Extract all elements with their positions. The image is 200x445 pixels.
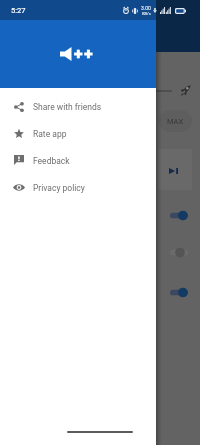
button[interactable]: Privacy policy [0, 174, 156, 201]
staticText: KB/s [142, 11, 151, 16]
staticText: 3.00 [141, 5, 151, 11]
staticText: 5:27 [11, 6, 26, 15]
button[interactable]: Toggle off [169, 247, 189, 258]
staticText: Rate app [33, 129, 67, 139]
button[interactable]: Rate app [0, 120, 156, 147]
button[interactable]: Toggle on [169, 210, 189, 221]
button[interactable]: MAX [159, 110, 192, 132]
button[interactable]: Play next [169, 168, 178, 174]
staticText: Feedback [33, 156, 70, 166]
button[interactable]: Share with friends [0, 93, 156, 120]
staticText: Share with friends [33, 102, 102, 112]
button[interactable]: Toggle on [169, 287, 189, 298]
button[interactable]: Boost volume [180, 85, 191, 96]
button[interactable]: Feedback [0, 147, 156, 174]
staticText: MAX [167, 117, 184, 126]
staticText: Privacy policy [33, 183, 85, 193]
